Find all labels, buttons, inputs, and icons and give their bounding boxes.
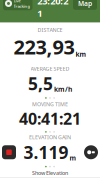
staticText: Show Elevation bbox=[32, 169, 68, 176]
staticText: 223,93 bbox=[13, 33, 74, 60]
staticText: 5,5 bbox=[28, 72, 53, 95]
button[interactable]: Stop recording bbox=[2, 145, 16, 159]
staticText: Live Tracking bbox=[13, 0, 30, 9]
staticText: Map bbox=[78, 0, 92, 8]
staticText: 23:20:21 bbox=[37, 0, 68, 19]
staticText: MOVING TIME bbox=[32, 101, 68, 108]
staticText: 3.119 bbox=[23, 141, 68, 164]
staticText: DISTANCE bbox=[37, 26, 62, 33]
staticText: 40:41:21 bbox=[19, 108, 81, 129]
button[interactable]: Next bbox=[84, 145, 98, 159]
staticText: km/h bbox=[54, 85, 72, 94]
button[interactable]: Live Tracking bbox=[3, 0, 32, 10]
staticText: m bbox=[69, 153, 76, 162]
button[interactable]: Map bbox=[73, 0, 97, 10]
staticText: AVERAGE SPEED bbox=[30, 65, 69, 72]
staticText: km bbox=[75, 50, 86, 59]
button[interactable]: Show Elevation bbox=[28, 168, 72, 177]
staticText: ELEVATION GAIN bbox=[29, 134, 71, 141]
